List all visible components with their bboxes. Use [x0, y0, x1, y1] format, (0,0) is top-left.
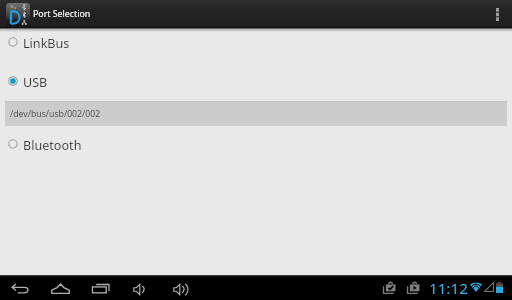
button[interactable]: Home [40, 275, 80, 300]
button[interactable]: LinkBus [0, 24, 512, 62]
button[interactable]: USB [0, 63, 512, 101]
button[interactable]: Back [0, 275, 40, 300]
staticText: USB [23, 74, 48, 91]
button[interactable]: Bluetooth [0, 126, 512, 164]
staticText: LinkBus [23, 35, 70, 52]
staticText: 11:12 [429, 278, 468, 299]
staticText: Bluetooth [23, 137, 82, 154]
staticText: Port Selection [33, 8, 91, 20]
button[interactable]: /dev/bus/usb/002/002 [5, 101, 507, 126]
button[interactable]: More options [482, 0, 512, 28]
button[interactable]: Volume up [160, 275, 200, 300]
button[interactable]: Port Selection [0, 0, 482, 28]
staticText: /dev/bus/usb/002/002 [10, 108, 101, 120]
button[interactable]: Recents [80, 275, 120, 300]
button[interactable]: Volume down [120, 275, 160, 300]
